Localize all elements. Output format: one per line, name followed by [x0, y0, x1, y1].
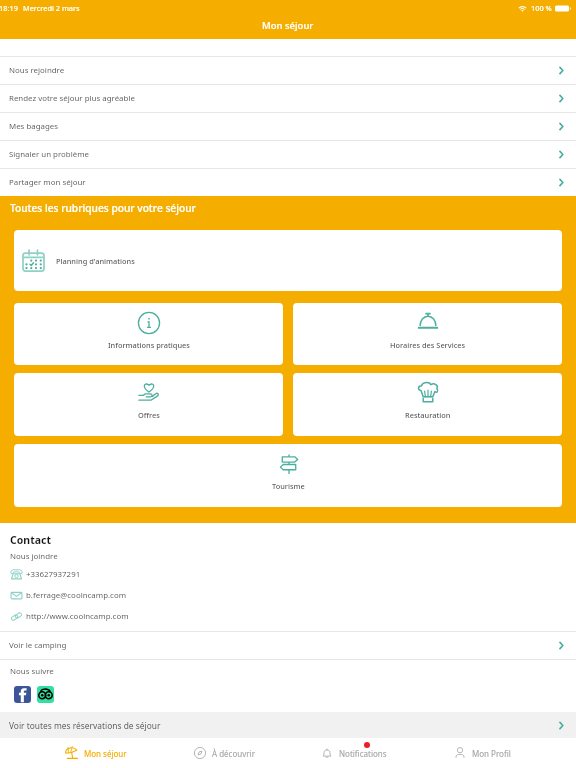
button[interactable]: TripAdvisor [37, 686, 54, 703]
button[interactable]: http://www.coolncamp.com [0, 606, 576, 627]
staticText: Offres [138, 410, 160, 420]
staticText: Mes bagages [9, 121, 59, 132]
button[interactable]: Mes bagages [0, 113, 576, 140]
staticText: Notifications [339, 748, 387, 759]
button[interactable]: À découvrir [193, 738, 255, 768]
staticText: Tourisme [272, 481, 305, 491]
button[interactable]: Voir le camping [0, 632, 576, 659]
button[interactable]: Voir toutes mes réservations de séjour [0, 712, 576, 738]
staticText: Voir toutes mes réservations de séjour [9, 720, 161, 731]
staticText: Partager mon séjour [9, 177, 86, 188]
staticText: Mercredi 2 mars [23, 3, 80, 13]
staticText: Nous suivre [10, 666, 54, 677]
staticText: Nous rejoindre [9, 65, 65, 76]
staticText: +33627937291 [26, 569, 81, 580]
staticText: Informations pratiques [108, 340, 190, 350]
button[interactable]: Offres [14, 373, 283, 436]
staticText: 18:19 [0, 3, 18, 13]
staticText: Contact [10, 533, 51, 547]
staticText: Horaires des Services [390, 340, 466, 350]
staticText: Voir le camping [9, 640, 67, 651]
staticText: Restauration [405, 410, 451, 420]
button[interactable]: Nous rejoindre [0, 57, 576, 84]
staticText: Nous joindre [10, 551, 58, 562]
staticText: Toutes les rubriques pour votre séjour [10, 201, 196, 215]
button[interactable]: Partager mon séjour [0, 169, 576, 196]
button[interactable]: Signaler un problème [0, 141, 576, 168]
button[interactable]: +33627937291 [0, 564, 576, 585]
staticText: Mon séjour [84, 748, 127, 759]
button[interactable]: Tourisme [14, 444, 562, 507]
button[interactable]: Facebook [14, 686, 31, 703]
staticText: http://www.coolncamp.com [26, 611, 129, 622]
staticText: Mon Profil [472, 748, 511, 759]
staticText: Planning d'animations [56, 256, 135, 266]
button[interactable]: b.ferrage@coolncamp.com [0, 585, 576, 606]
button[interactable]: Mon séjour [65, 738, 127, 768]
staticText: Signaler un problème [9, 149, 90, 160]
staticText: À découvrir [212, 748, 255, 759]
staticText: Mon séjour [262, 19, 314, 32]
button[interactable]: Restauration [293, 373, 562, 436]
button[interactable]: Informations pratiques [14, 303, 283, 365]
button[interactable]: Planning d'animations [14, 230, 562, 291]
button[interactable]: Mon Profil [453, 738, 511, 768]
button[interactable]: Notifications [320, 738, 387, 768]
staticText: 100 % [531, 3, 552, 13]
button[interactable]: Horaires des Services [293, 303, 562, 365]
staticText: Rendez votre séjour plus agréable [9, 93, 135, 104]
staticText: b.ferrage@coolncamp.com [26, 590, 127, 601]
button[interactable]: Rendez votre séjour plus agréable [0, 85, 576, 112]
